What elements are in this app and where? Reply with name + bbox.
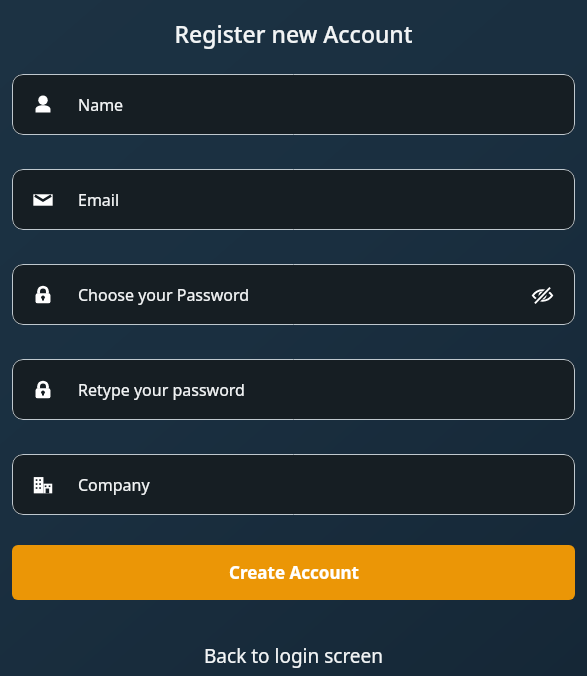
button[interactable]: Email bbox=[12, 169, 575, 230]
button[interactable]: Toggle password visibility bbox=[527, 280, 557, 310]
staticText: Register new Account bbox=[174, 18, 413, 49]
staticText: Retype your password bbox=[78, 379, 245, 401]
button[interactable]: Back to login screen bbox=[0, 635, 587, 676]
staticText: Company bbox=[78, 474, 150, 496]
staticText: Choose your Password bbox=[78, 284, 250, 306]
button[interactable]: Company bbox=[12, 454, 575, 515]
button[interactable]: Choose your Password bbox=[12, 264, 575, 325]
staticText: Create Account bbox=[229, 561, 359, 584]
staticText: Back to login screen bbox=[204, 643, 384, 668]
staticText: Email bbox=[78, 189, 120, 211]
button[interactable]: Create Account bbox=[12, 545, 575, 600]
button[interactable]: Name bbox=[12, 74, 575, 135]
staticText: Name bbox=[78, 94, 124, 116]
button[interactable]: Retype your password bbox=[12, 359, 575, 420]
